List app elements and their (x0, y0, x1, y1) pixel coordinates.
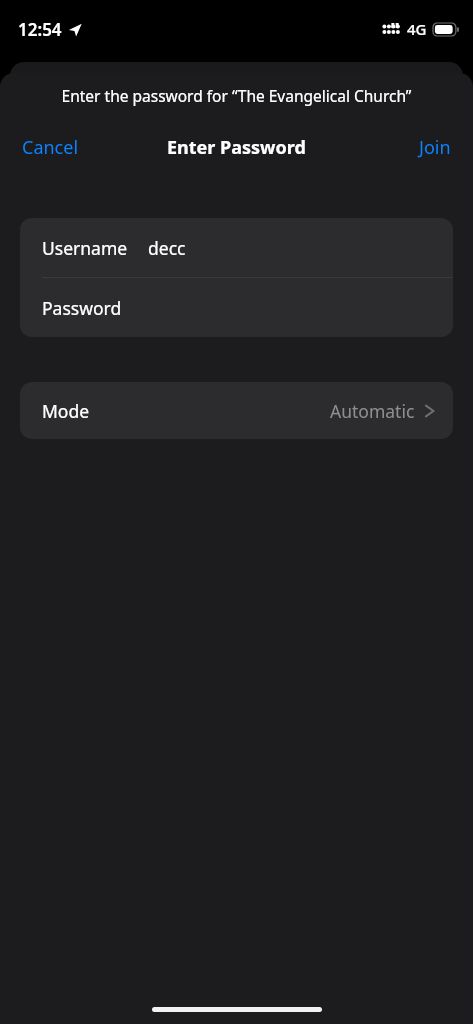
button[interactable]: Cancel (0, 129, 101, 166)
staticText: Enter Password (167, 135, 306, 160)
staticText: 4G (407, 19, 427, 39)
staticText: Join (419, 135, 451, 160)
staticText: Password (42, 296, 122, 320)
staticText: decc (148, 236, 186, 260)
staticText: Automatic (330, 399, 415, 423)
button[interactable]: Mode (20, 382, 453, 439)
button[interactable]: Username (20, 218, 453, 277)
button[interactable]: Join (397, 129, 473, 166)
button[interactable]: Password (20, 278, 453, 337)
staticText: Username (42, 236, 128, 260)
staticText: Mode (42, 399, 90, 423)
staticText: Cancel (22, 135, 79, 160)
staticText: 12:54 (18, 18, 62, 41)
staticText: Enter the password for “The Evangelical … (16, 85, 457, 106)
